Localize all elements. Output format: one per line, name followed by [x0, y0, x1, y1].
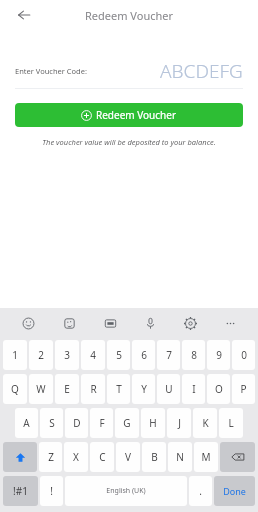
staticText: T: [116, 382, 122, 396]
staticText: Z: [48, 450, 54, 464]
staticText: S: [49, 416, 55, 430]
button[interactable]: X: [64, 442, 88, 472]
button[interactable]: 9: [207, 340, 230, 370]
staticText: !: [50, 484, 53, 498]
button[interactable]: Settings: [170, 308, 210, 338]
button[interactable]: 1: [3, 340, 27, 370]
staticText: ABCDEFG: [160, 58, 243, 84]
staticText: .: [199, 484, 202, 498]
button[interactable]: 2: [29, 340, 53, 370]
button[interactable]: More: [210, 308, 250, 338]
button[interactable]: D: [65, 408, 88, 438]
staticText: D: [73, 416, 81, 430]
button[interactable]: Emoji: [8, 308, 49, 338]
button[interactable]: 0: [232, 340, 255, 370]
staticText: 7: [166, 348, 172, 362]
staticText: C: [99, 450, 106, 464]
button[interactable]: M: [194, 442, 218, 472]
staticText: Redeem Voucher: [85, 8, 174, 23]
staticText: 3: [64, 348, 70, 362]
staticText: Done: [223, 485, 246, 497]
staticText: W: [36, 382, 46, 396]
staticText: P: [240, 382, 247, 396]
button[interactable]: R: [81, 374, 105, 404]
button[interactable]: Redeem Voucher: [15, 103, 243, 127]
staticText: K: [202, 416, 209, 430]
button[interactable]: L: [219, 408, 243, 438]
button[interactable]: Enter Voucher Code:: [15, 58, 243, 84]
staticText: English (UK): [106, 486, 146, 496]
staticText: Y: [141, 382, 147, 396]
button[interactable]: W: [29, 374, 53, 404]
button[interactable]: 4: [81, 340, 105, 370]
button[interactable]: S: [40, 408, 63, 438]
button[interactable]: H: [141, 408, 165, 438]
button[interactable]: Back: [10, 1, 38, 29]
button[interactable]: Shift: [3, 442, 37, 472]
button[interactable]: 5: [107, 340, 130, 370]
button[interactable]: V: [116, 442, 140, 472]
button[interactable]: Q: [3, 374, 27, 404]
button[interactable]: U: [157, 374, 180, 404]
staticText: G: [123, 416, 131, 430]
button[interactable]: B: [142, 442, 166, 472]
button[interactable]: Voice input: [130, 308, 170, 338]
button[interactable]: Done: [214, 476, 255, 506]
staticText: J: [178, 416, 181, 430]
button[interactable]: C: [90, 442, 114, 472]
staticText: U: [165, 382, 173, 396]
staticText: R: [90, 382, 97, 396]
button[interactable]: English (UK): [65, 476, 187, 506]
staticText: N: [176, 450, 184, 464]
button[interactable]: Z: [39, 442, 62, 472]
staticText: 0: [241, 348, 247, 362]
button[interactable]: 3: [55, 340, 79, 370]
staticText: L: [228, 416, 234, 430]
button[interactable]: J: [167, 408, 191, 438]
button[interactable]: .: [189, 476, 212, 506]
staticText: I: [192, 382, 196, 396]
button[interactable]: A: [15, 408, 38, 438]
button[interactable]: Y: [132, 374, 155, 404]
button[interactable]: I: [182, 374, 205, 404]
staticText: M: [201, 450, 211, 464]
button[interactable]: O: [207, 374, 230, 404]
button[interactable]: 6: [132, 340, 155, 370]
staticText: F: [99, 416, 105, 430]
staticText: X: [73, 450, 79, 464]
button[interactable]: T: [107, 374, 130, 404]
staticText: Redeem Voucher: [96, 108, 177, 122]
staticText: 8: [191, 348, 197, 362]
button[interactable]: P: [232, 374, 255, 404]
button[interactable]: G: [115, 408, 139, 438]
staticText: V: [125, 450, 131, 464]
staticText: A: [23, 416, 30, 430]
staticText: Enter Voucher Code:: [15, 66, 87, 76]
button[interactable]: 8: [182, 340, 205, 370]
staticText: !#1: [13, 484, 28, 498]
button[interactable]: !: [40, 476, 63, 506]
button[interactable]: E: [55, 374, 79, 404]
staticText: 6: [141, 348, 147, 362]
staticText: B: [151, 450, 158, 464]
button[interactable]: 7: [157, 340, 180, 370]
button[interactable]: K: [193, 408, 217, 438]
staticText: E: [64, 382, 70, 396]
staticText: 5: [116, 348, 122, 362]
staticText: 9: [216, 348, 222, 362]
staticText: Q: [11, 382, 19, 396]
staticText: 2: [38, 348, 44, 362]
button[interactable]: GIF: [90, 308, 130, 338]
staticText: The voucher value will be deposited to y…: [0, 137, 258, 147]
staticText: 4: [90, 348, 96, 362]
button[interactable]: F: [90, 408, 113, 438]
button[interactable]: Backspace: [220, 442, 255, 472]
button[interactable]: !#1: [3, 476, 38, 506]
button[interactable]: N: [168, 442, 192, 472]
staticText: H: [149, 416, 157, 430]
staticText: O: [215, 382, 223, 396]
button[interactable]: Stickers: [49, 308, 90, 338]
staticText: 1: [12, 348, 18, 362]
